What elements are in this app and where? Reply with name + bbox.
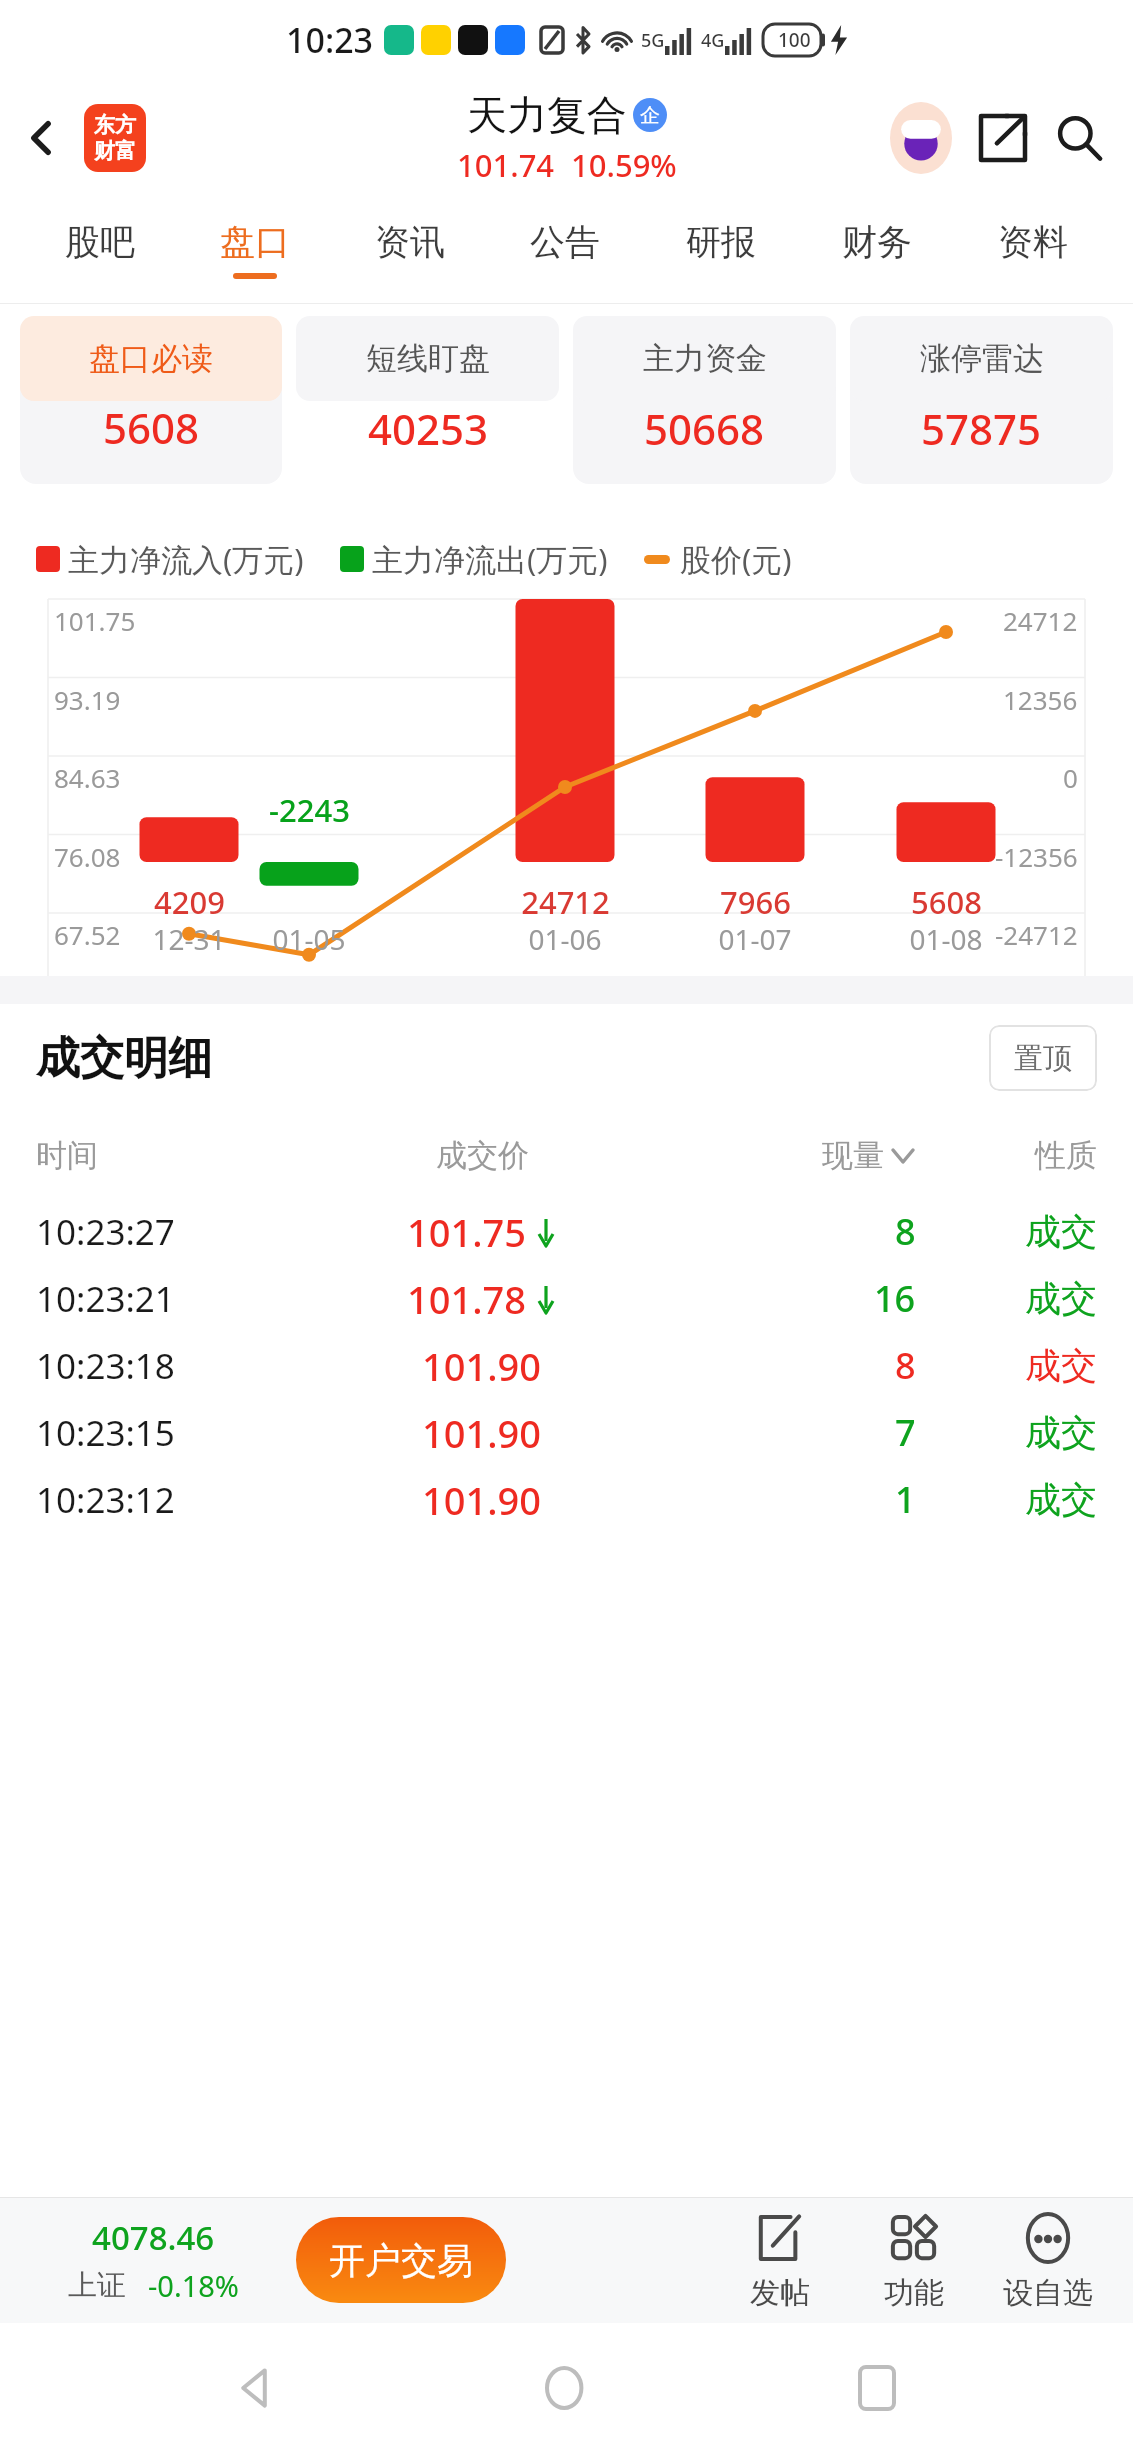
staticText: 10:23:27 bbox=[36, 1208, 325, 1256]
button[interactable]: Back bbox=[10, 106, 74, 170]
staticText: 置顶 bbox=[1014, 1040, 1072, 1077]
staticText: 10:23:15 bbox=[36, 1409, 325, 1457]
button[interactable]: 功能 bbox=[847, 2208, 981, 2312]
staticText: 10:23:18 bbox=[36, 1342, 325, 1390]
staticText: 4209 bbox=[154, 881, 225, 923]
staticText: 50668 bbox=[644, 400, 765, 457]
staticText: 40253 bbox=[368, 400, 489, 457]
button[interactable]: 研报 bbox=[643, 195, 799, 303]
button[interactable]: 开户交易 bbox=[296, 2217, 506, 2303]
staticText: 4G bbox=[701, 28, 725, 53]
staticText: 67.52 bbox=[54, 917, 121, 952]
button[interactable]: 短线盯盘 bbox=[296, 316, 559, 401]
staticText: 01-05 bbox=[272, 920, 346, 958]
button[interactable]: 20日净流入 bbox=[573, 324, 836, 484]
staticText: 资料 bbox=[998, 220, 1068, 264]
staticText: 成交明细 bbox=[36, 1031, 212, 1086]
staticText: 上证 bbox=[68, 2267, 126, 2304]
button[interactable]: 60日净流入 bbox=[850, 324, 1113, 484]
staticText: 8 bbox=[895, 1207, 916, 1256]
staticText: 资讯 bbox=[375, 220, 445, 264]
button[interactable]: 涨停雷达 bbox=[850, 316, 1113, 401]
button[interactable]: 10:23:21 bbox=[36, 1265, 1097, 1332]
button[interactable]: East Money bbox=[84, 104, 146, 172]
staticText: 16 bbox=[874, 1274, 916, 1323]
staticText: 主力净流入(万元) bbox=[68, 538, 304, 580]
staticText: 成交 bbox=[1025, 1276, 1097, 1321]
staticText: 5日净流入 bbox=[366, 351, 490, 388]
staticText: 5608 bbox=[103, 399, 200, 456]
staticText: 24712 bbox=[1003, 603, 1078, 638]
staticText: 01-06 bbox=[528, 920, 602, 958]
button[interactable]: Search bbox=[1043, 102, 1115, 174]
button[interactable]: 股吧 bbox=[22, 195, 177, 303]
staticText: 主力资金 bbox=[643, 339, 767, 378]
button[interactable]: 10:23:12 bbox=[36, 1466, 1097, 1533]
staticText: 101.90 bbox=[422, 1340, 542, 1392]
staticText: 时间 bbox=[36, 1136, 325, 1175]
button[interactable]: 置顶 bbox=[989, 1025, 1097, 1091]
button[interactable]: 公告 bbox=[487, 195, 643, 303]
staticText: 1 bbox=[895, 1475, 916, 1524]
staticText: 设自选 bbox=[1003, 2274, 1093, 2312]
staticText: 东方 bbox=[94, 112, 136, 138]
staticText: 0 bbox=[1063, 760, 1078, 795]
staticText: 5G bbox=[641, 28, 665, 53]
button[interactable]: Recents bbox=[822, 2333, 932, 2443]
staticText: 发帖 bbox=[750, 2274, 810, 2312]
button[interactable]: 财务 bbox=[799, 195, 955, 303]
button[interactable]: 资讯 bbox=[332, 195, 487, 303]
staticText: 涨停雷达 bbox=[920, 339, 1044, 378]
button[interactable]: 盘口必读 bbox=[20, 316, 282, 401]
staticText: 开户交易 bbox=[329, 2238, 473, 2283]
staticText: 成交 bbox=[1025, 1209, 1097, 1254]
button[interactable]: 发帖 bbox=[713, 2208, 847, 2312]
button[interactable]: 5日净流入 bbox=[296, 324, 559, 484]
staticText: -0.18% bbox=[148, 2266, 239, 2305]
staticText: 成交 bbox=[1025, 1343, 1097, 1388]
staticText: 10:23:21 bbox=[36, 1275, 325, 1323]
button[interactable]: 主力资金 bbox=[573, 316, 836, 401]
staticText: 5608 bbox=[911, 881, 982, 923]
staticText: 101.90 bbox=[422, 1407, 542, 1459]
button[interactable]: Share bbox=[967, 102, 1039, 174]
staticText: 现量 bbox=[822, 1136, 884, 1175]
button[interactable]: 10:23:18 bbox=[36, 1332, 1097, 1399]
staticText: 今日净流入 bbox=[84, 353, 219, 387]
staticText: -12356 bbox=[995, 839, 1078, 874]
staticText: 101.75 bbox=[54, 603, 136, 638]
button[interactable]: 4078.46 bbox=[18, 2215, 288, 2305]
staticText: 8 bbox=[895, 1341, 916, 1390]
button[interactable]: 设自选 bbox=[981, 2208, 1115, 2312]
staticText: 公告 bbox=[530, 220, 600, 264]
staticText: 成交 bbox=[1025, 1477, 1097, 1522]
staticText: 101.90 bbox=[422, 1474, 542, 1526]
button[interactable]: 资料 bbox=[955, 195, 1111, 303]
staticText: -2243 bbox=[269, 789, 350, 831]
staticText: 成交价 bbox=[436, 1136, 529, 1175]
staticText: 性质 bbox=[1035, 1136, 1097, 1175]
staticText: 100 bbox=[778, 27, 811, 53]
staticText: 101.75 bbox=[407, 1206, 527, 1258]
staticText: 93.19 bbox=[54, 682, 121, 717]
button[interactable]: 10:23:27 bbox=[36, 1198, 1097, 1265]
staticText: 7966 bbox=[720, 881, 791, 923]
staticText: 功能 bbox=[884, 2274, 944, 2312]
button[interactable]: Assistant bbox=[883, 100, 959, 176]
staticText: 57875 bbox=[921, 400, 1042, 457]
button[interactable]: 10:23:15 bbox=[36, 1399, 1097, 1466]
staticText: 10:23:12 bbox=[36, 1476, 325, 1524]
staticText: 短线盯盘 bbox=[366, 339, 490, 378]
staticText: 24712 bbox=[521, 881, 610, 923]
staticText: 12356 bbox=[1003, 682, 1078, 717]
staticText: 84.63 bbox=[54, 760, 121, 795]
button[interactable]: 今日净流入 bbox=[20, 324, 282, 484]
staticText: -24712 bbox=[995, 917, 1078, 952]
staticText: 盘口必读 bbox=[89, 339, 213, 378]
staticText: 20日净流入 bbox=[635, 351, 774, 388]
button[interactable]: 盘口 bbox=[177, 195, 332, 303]
staticText: 研报 bbox=[686, 220, 756, 264]
staticText: 股吧 bbox=[65, 220, 135, 264]
button[interactable]: Back bbox=[201, 2333, 311, 2443]
button[interactable]: Home bbox=[512, 2333, 622, 2443]
